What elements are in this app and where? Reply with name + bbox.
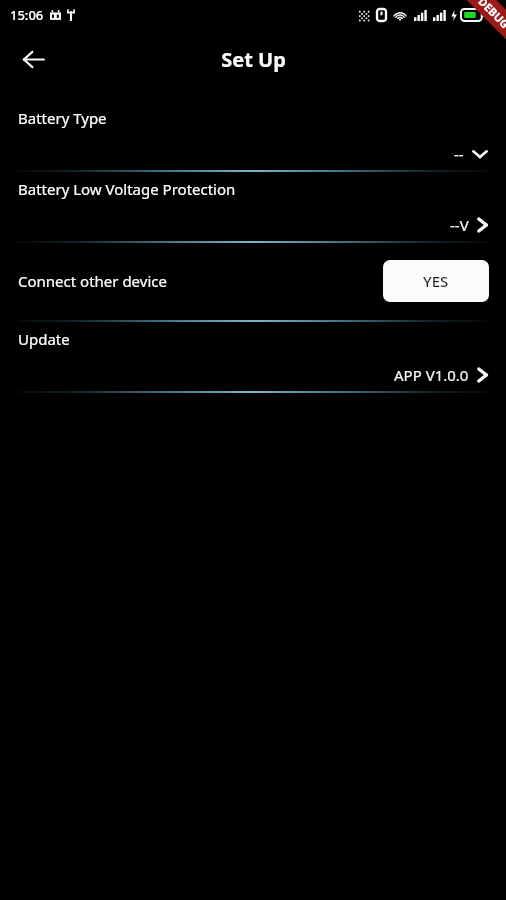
staticText: Battery Low Voltage Protection xyxy=(18,179,236,199)
button[interactable]: Update xyxy=(0,323,506,389)
staticText: Set Up xyxy=(221,46,286,73)
staticText: -- xyxy=(454,144,464,164)
staticText: DEBUG xyxy=(475,0,506,31)
staticText: APP V1.0.0 xyxy=(394,365,469,385)
button[interactable]: Back xyxy=(10,36,56,82)
button[interactable]: YES xyxy=(383,260,489,302)
staticText: Update xyxy=(18,329,70,349)
button[interactable]: Battery Type xyxy=(0,102,506,168)
staticText: Connect other device xyxy=(18,271,167,291)
staticText: 15:06 xyxy=(10,6,44,24)
staticText: YES xyxy=(423,271,449,291)
button[interactable]: Battery Low Voltage Protection xyxy=(0,173,506,239)
staticText: --V xyxy=(450,215,469,235)
staticText: 73 xyxy=(486,6,501,24)
staticText: Battery Type xyxy=(18,108,107,128)
